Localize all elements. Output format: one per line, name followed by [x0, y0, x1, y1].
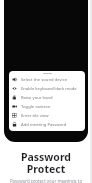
staticText: Password protect your meetings to keep y…	[5, 178, 87, 183]
button[interactable]: Enable keyboard/dark mode	[9, 84, 85, 93]
button[interactable]: Toggle camera	[9, 102, 85, 111]
staticText: Add meeting Password	[21, 122, 67, 128]
button[interactable]: Select the sound device	[9, 75, 85, 84]
other: Raise your hand	[12, 95, 17, 100]
button[interactable]: Raise your hand	[9, 93, 85, 102]
other: Toggle camera	[12, 104, 17, 109]
button[interactable]: Add meeting Password	[9, 120, 85, 129]
staticText: Enter tile view	[21, 113, 49, 119]
button[interactable]: Enter tile view	[9, 111, 85, 120]
other: Select the sound device	[12, 77, 17, 82]
staticText: Enable keyboard/dark mode	[21, 86, 77, 92]
other: Add meeting Password	[12, 122, 17, 127]
staticText: Raise your hand	[21, 95, 53, 101]
other: Enter tile view	[12, 113, 17, 118]
staticText: Select the sound device	[21, 77, 68, 83]
button[interactable]: Password Protect	[5, 150, 87, 176]
other: Enable keyboard/dark mode	[12, 86, 17, 91]
staticText: Toggle camera	[21, 104, 50, 110]
staticText: Password Protect	[5, 150, 87, 176]
